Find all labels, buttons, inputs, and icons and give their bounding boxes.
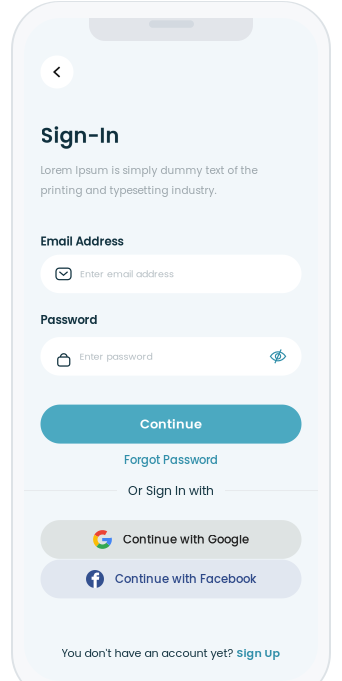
staticText: Continue with Facebook [115, 571, 256, 587]
staticText: Enter email address [80, 267, 174, 281]
button[interactable]: Continue with Google [40, 520, 301, 559]
staticText: Password [40, 312, 97, 328]
button[interactable]: Back [40, 55, 73, 88]
staticText: Lorem Ipsum is simply dummy text of the … [40, 163, 257, 198]
button[interactable]: Continue [40, 405, 301, 444]
button[interactable]: Continue with Facebook [40, 560, 301, 598]
staticText: You don't have an account yet? [61, 645, 236, 661]
staticText: Continue with Google [123, 531, 249, 548]
button[interactable]: Forgot Password [40, 451, 301, 469]
staticText: Email Address [40, 233, 123, 250]
staticText: Sign-In [40, 121, 119, 150]
staticText: Forgot Password [124, 452, 218, 468]
staticText: Or Sign In with [128, 482, 214, 499]
staticText: Enter password [79, 350, 152, 363]
button[interactable]: You don't have an account yet? [40, 645, 301, 661]
staticText: Sign Up [236, 645, 280, 661]
staticText: Continue [140, 415, 202, 433]
button[interactable]: Show password [269, 349, 286, 364]
